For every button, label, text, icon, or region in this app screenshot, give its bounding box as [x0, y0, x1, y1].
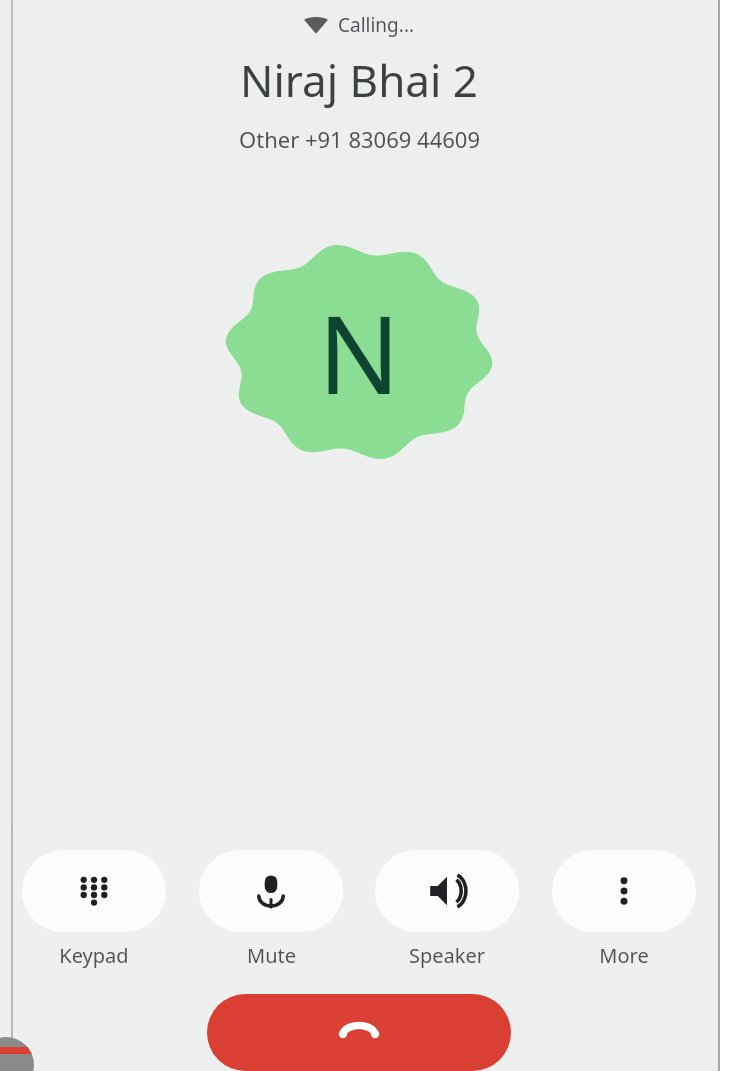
- staticText: Speaker: [409, 942, 485, 969]
- button[interactable]: Keypad: [22, 850, 166, 969]
- staticText: More: [599, 942, 649, 969]
- staticText: Niraj Bhai 2: [240, 50, 478, 110]
- staticText: Calling...: [338, 12, 415, 38]
- button[interactable]: Speaker: [375, 850, 519, 969]
- button[interactable]: More: [552, 850, 696, 969]
- button[interactable]: Mute: [199, 850, 343, 969]
- staticText: N: [318, 279, 401, 426]
- other: Wi-Fi calling: [303, 12, 329, 38]
- staticText: Mute: [247, 942, 296, 969]
- staticText: Keypad: [59, 942, 129, 969]
- staticText: Other +91 83069 44609: [239, 124, 480, 154]
- button[interactable]: End call: [207, 994, 511, 1071]
